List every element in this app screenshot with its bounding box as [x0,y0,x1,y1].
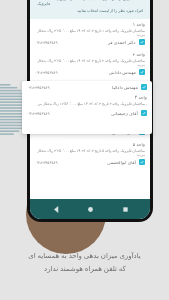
button[interactable]: Home [81,200,99,218]
staticText: آقای مفضلی [112,129,136,135]
button[interactable]: Select unit [139,99,145,105]
button[interactable]: واحد ۲ [30,49,150,79]
button[interactable]: Select unit [141,110,147,116]
button[interactable]: واحد ۱ [30,19,150,49]
staticText: ساختمان فایزویک واحد واحد ۱ تاریخ ۱۴۰۳/۰… [35,28,145,37]
button[interactable]: Select unit [139,69,145,75]
button[interactable]: واحد ۳ [30,79,150,109]
button[interactable]: Select unit [141,84,147,90]
staticText: آقای رحیمیان [111,99,136,105]
button[interactable]: ۰۹۱۲۳۴۵۶۷۸۹ [22,81,152,134]
button[interactable]: Select unit [139,159,145,165]
staticText: ساختمان فایزویک واحد ۳ تاریخ ۱۴۰۳/۰۸/۰۳ … [27,101,147,106]
staticText: یادآوری میزان بدهی واحد به همسایه ای [28,251,141,261]
button[interactable]: واحد ۴ [30,109,150,139]
staticText: واحد ۵ [35,141,145,147]
staticText: ۰۹۱۲۳۴۵۶۷۸۹ [35,100,58,104]
staticText: مهندس دادائیا [112,84,138,90]
staticText: برای ارسال صورتحساب به واحدها از طریق پی… [37,0,143,6]
staticText: مهندس داداش [109,69,136,75]
staticText: دکتر احمدی فر [108,39,136,45]
staticText: ساختمان فایزویک واحد واحد ۳ تاریخ ۱۴۰۳/۰… [35,88,145,97]
button[interactable]: Back [47,200,65,218]
staticText: واحد ۳ [35,81,145,87]
button[interactable]: Select unit [139,129,145,135]
staticText: واحد ۴ [35,111,145,117]
staticText: آقای رحیمیانی [111,110,138,116]
staticText: ۰۹۱۲۳۴۵۶۷۸۹ [35,40,58,44]
staticText: آقای ابوالحسنی [107,159,136,165]
button[interactable]: Recents [116,200,134,218]
staticText: ساختمان فایزویک واحد واحد ۵ تاریخ ۱۴۰۳/۰… [35,148,145,157]
staticText: افراد مورد نظر را از لیست انتخاب نمایید [77,8,143,13]
staticText: که تلفن همراه هوشمند ندارد [44,264,126,274]
staticText: ۰۹۱۲۳۴۵۶۷۸۹ [27,111,50,115]
button[interactable]: واحد ۵ [30,139,150,169]
button[interactable]: Select unit [139,39,145,45]
staticText: ساختمان فایزویک واحد واحد ۲ تاریخ ۱۴۰۳/۰… [35,58,145,67]
staticText: ۰۹۱۲۳۴۵۶۷۸۹ [27,85,50,89]
staticText: ۰۹۱۲۳۴۵۶۷۸۹ [35,160,58,164]
staticText: ۰۹۱۲۳۴۵۶۷۸۹ [35,70,58,74]
staticText: واحد ۳ [27,94,147,100]
staticText: واحد ۲ [35,51,145,57]
staticText: واحد ۱ [35,21,145,27]
